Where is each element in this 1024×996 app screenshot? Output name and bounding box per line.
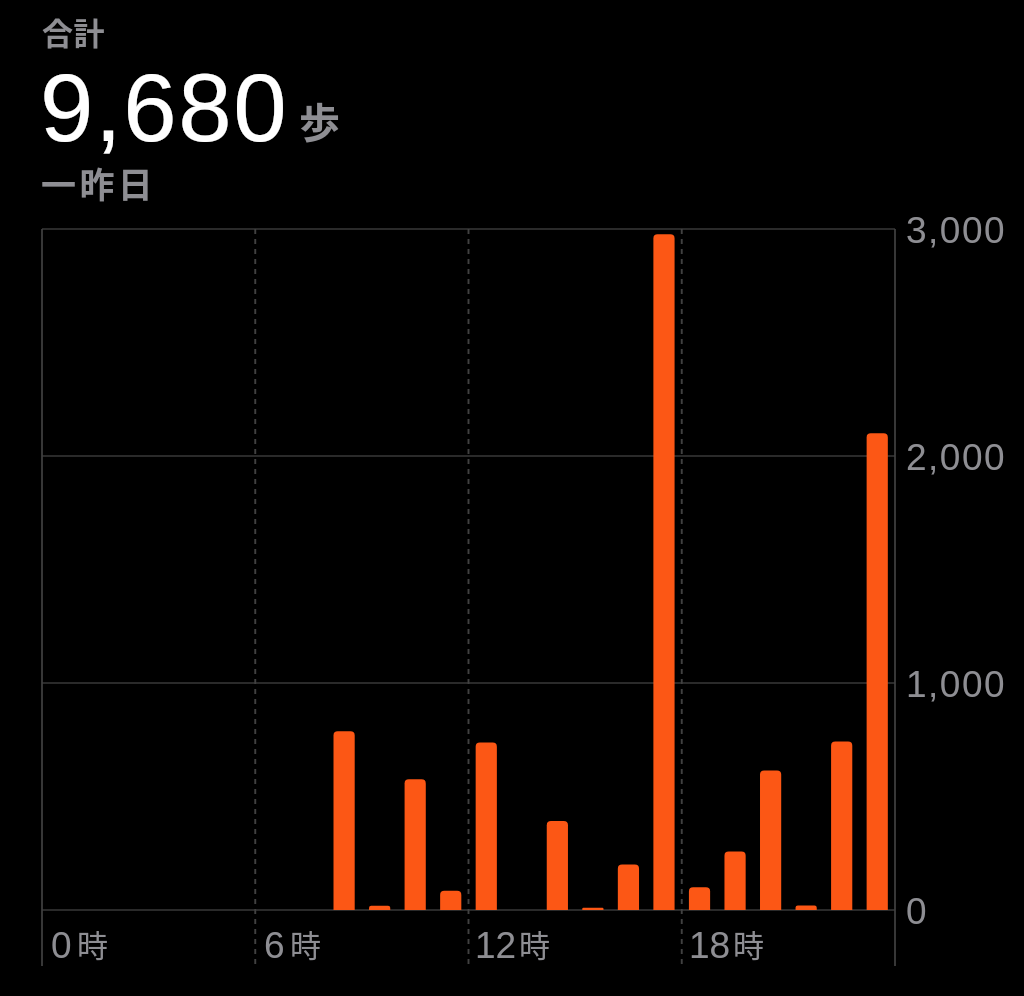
staticText: 3,000 [906, 210, 1007, 251]
staticText: 時 [290, 921, 321, 966]
staticText: 合計 [42, 9, 106, 54]
staticText: 18 [689, 925, 731, 966]
staticText: 9,680 [40, 54, 289, 161]
staticText: 0 [51, 925, 72, 966]
staticText: 一昨日 [41, 157, 157, 208]
staticText: 0 [906, 891, 929, 932]
staticText: 2,000 [906, 437, 1007, 478]
staticText: 6 [264, 925, 285, 966]
staticText: 時 [77, 921, 108, 966]
staticText: 1,000 [906, 664, 1007, 705]
staticText: 歩 [299, 90, 340, 149]
button[interactable]: 合計 9,680 歩 一昨日 [30, 4, 360, 204]
staticText: 時 [733, 921, 764, 966]
staticText: 時 [519, 921, 550, 966]
button[interactable]: Hourly step count chart [30, 210, 1010, 980]
staticText: 12 [475, 925, 517, 966]
